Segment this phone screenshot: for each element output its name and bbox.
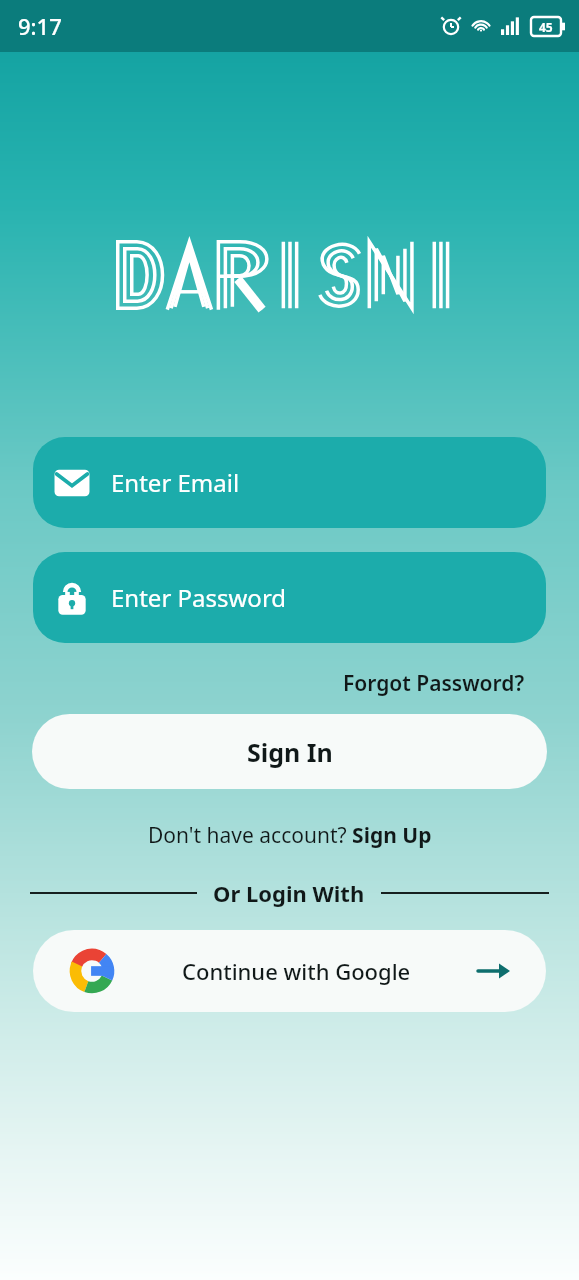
staticText: Forgot Password? <box>343 669 525 698</box>
button[interactable]: Enter Email <box>33 437 546 528</box>
button[interactable]: Don't have account? Sign Up <box>142 817 438 854</box>
staticText: 45 <box>539 19 553 35</box>
staticText: 9:17 <box>18 11 62 41</box>
staticText: Enter Email <box>111 466 240 499</box>
button[interactable]: Enter Password <box>33 552 546 643</box>
staticText: Or Login With <box>213 878 365 908</box>
staticText: Sign In <box>247 735 333 769</box>
button[interactable]: Sign In <box>32 714 547 789</box>
staticText: Don't have account? Sign Up <box>148 821 432 850</box>
staticText: Continue with Google <box>182 956 411 986</box>
staticText: Enter Password <box>111 581 287 614</box>
button[interactable]: Continue with Google <box>33 930 546 1012</box>
button[interactable]: Forgot Password? <box>339 665 529 702</box>
